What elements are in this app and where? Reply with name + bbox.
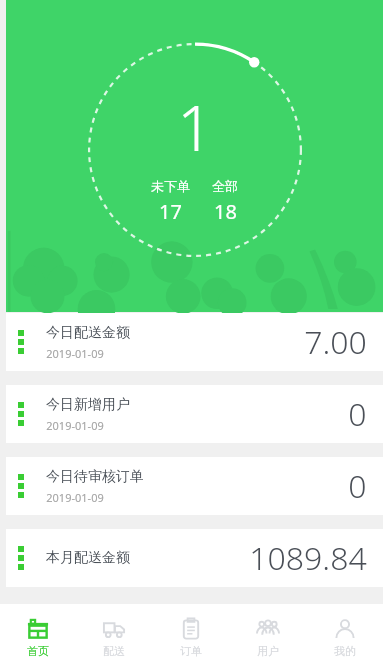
staticText: 配送	[103, 644, 125, 658]
button[interactable]: 用户	[229, 604, 306, 670]
staticText: 今日配送金额	[46, 324, 130, 342]
button[interactable]: 今日待审核订单	[6, 457, 383, 515]
staticText: 0	[348, 392, 367, 436]
staticText: 今日待审核订单	[46, 468, 144, 486]
staticText: 我的	[334, 644, 356, 658]
button[interactable]: 今日配送金额	[6, 313, 383, 371]
staticText: 今日新增用户	[46, 396, 130, 414]
staticText: 首页	[27, 644, 49, 658]
staticText: 未下单	[151, 178, 190, 194]
staticText: 18	[214, 198, 237, 225]
staticText: 1	[177, 85, 213, 169]
staticText: 订单	[180, 644, 202, 658]
button[interactable]: 今日新增用户	[6, 385, 383, 443]
button[interactable]: 配送	[76, 604, 152, 670]
staticText: 用户	[257, 644, 279, 658]
button[interactable]: 我的	[306, 604, 383, 670]
staticText: 0	[348, 464, 367, 508]
staticText: 本月配送金额	[46, 549, 130, 567]
button[interactable]: 首页	[0, 604, 76, 670]
button[interactable]: 本月配送金额	[6, 529, 383, 587]
staticText: 2019-01-09	[46, 418, 104, 433]
staticText: 7.00	[304, 320, 367, 364]
staticText: 17	[159, 198, 182, 225]
button[interactable]: 订单	[152, 604, 229, 670]
staticText: 2019-01-09	[46, 346, 104, 361]
staticText: 2019-01-09	[46, 490, 104, 505]
staticText: 全部	[212, 178, 238, 194]
staticText: 1089.84	[249, 536, 367, 580]
